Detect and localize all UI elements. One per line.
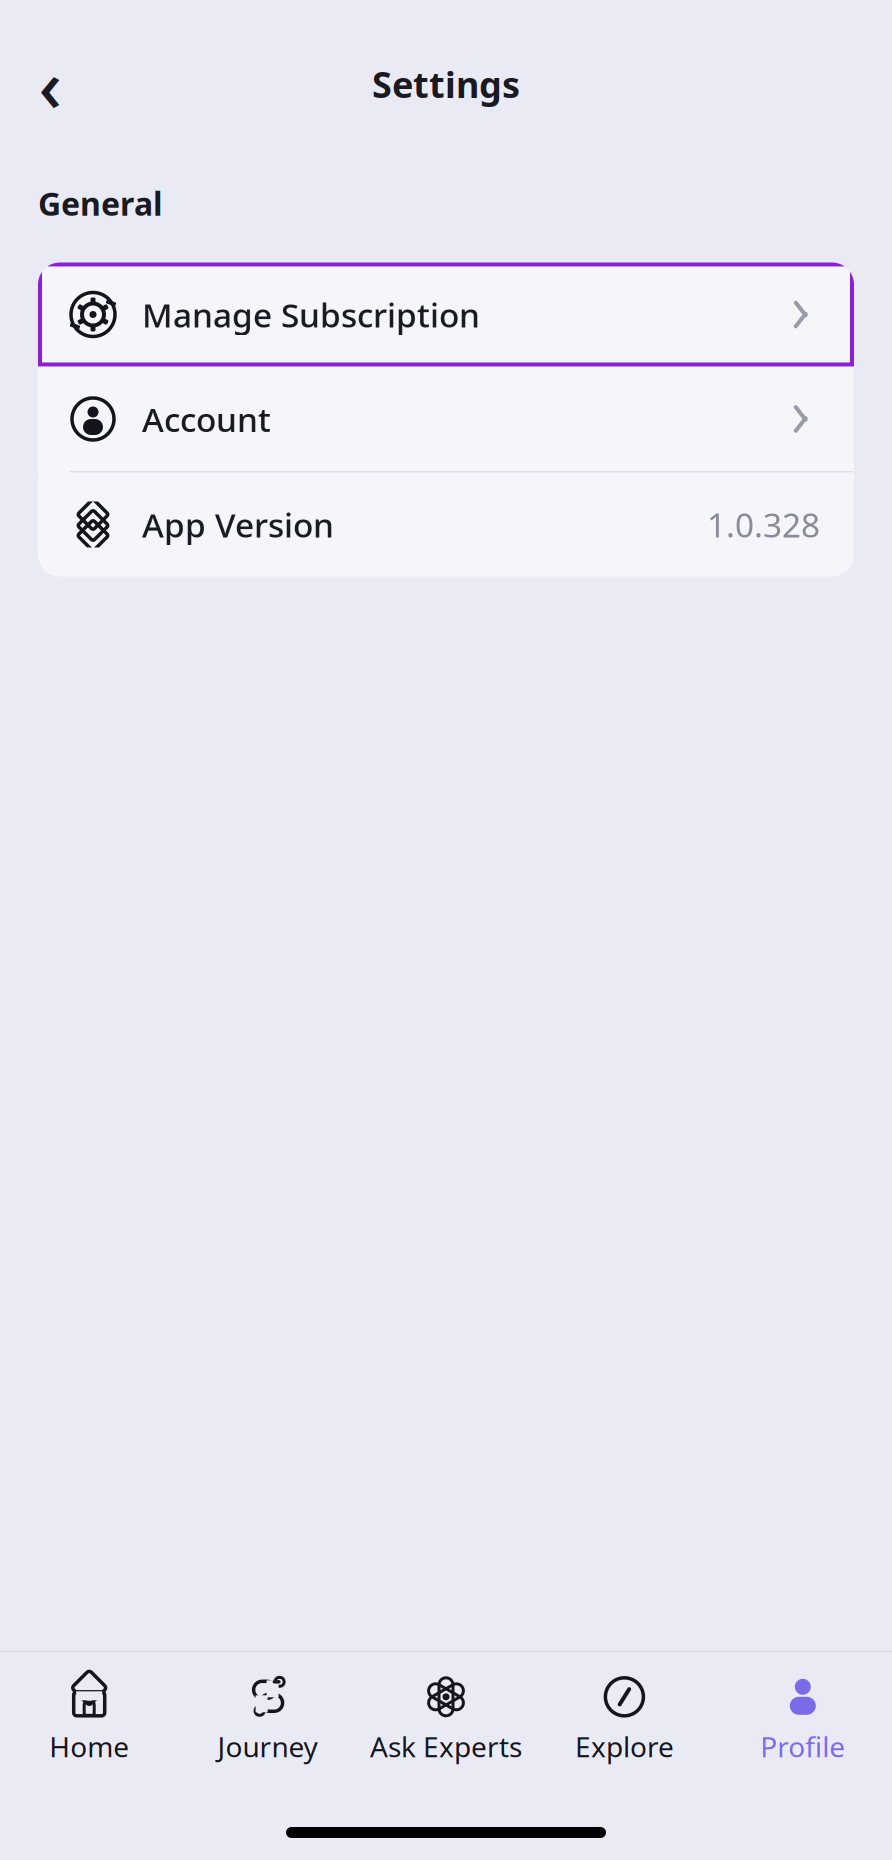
staticText: Ask Experts	[370, 1728, 522, 1765]
button[interactable]: Ask Experts	[357, 1672, 535, 1769]
button[interactable]: Back	[22, 56, 78, 112]
button[interactable]: Profile	[714, 1672, 892, 1769]
button[interactable]: Account	[38, 366, 854, 472]
staticText: ‹	[38, 36, 61, 132]
staticText: 1.0.328	[707, 502, 820, 547]
staticText: General	[38, 182, 163, 224]
button[interactable]: Home	[0, 1672, 178, 1769]
staticText: Explore	[575, 1728, 674, 1765]
staticText: Profile	[760, 1728, 845, 1765]
button[interactable]: Journey	[178, 1672, 357, 1769]
staticText: Account	[142, 397, 271, 441]
staticText: Settings	[372, 60, 520, 108]
staticText: App Version	[142, 502, 334, 547]
button[interactable]: Manage Subscription	[38, 262, 854, 366]
staticText: Journey	[218, 1728, 318, 1765]
staticText: Home	[49, 1728, 129, 1765]
button[interactable]: Explore	[535, 1672, 714, 1769]
staticText: Manage Subscription	[142, 292, 480, 337]
